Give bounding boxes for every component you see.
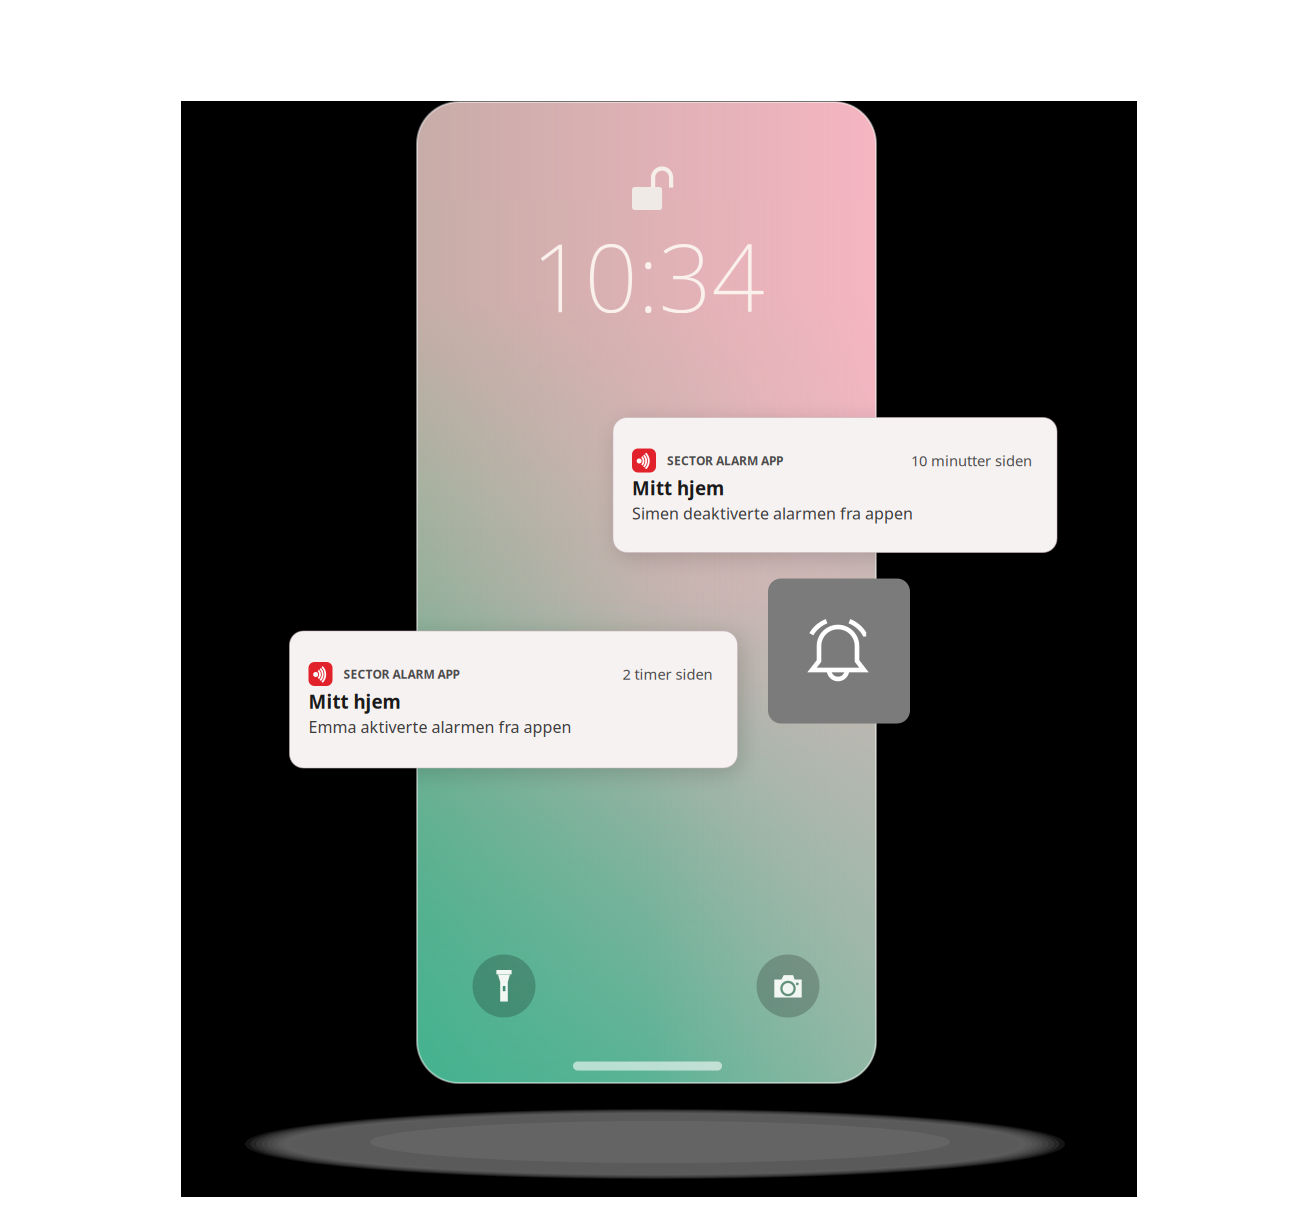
staticText: 10:34 [531, 214, 764, 338]
staticText: Mitt hjem [308, 689, 400, 714]
button[interactable]: Camera [756, 954, 819, 1017]
staticText: 2 timer siden [622, 664, 712, 684]
staticText: 10 minutter siden [911, 451, 1032, 470]
staticText: Emma aktiverte alarmen fra appen [308, 716, 571, 737]
button[interactable]: SECTOR ALARM APP [613, 417, 1057, 552]
staticText: SECTOR ALARM APP [343, 666, 459, 682]
button[interactable]: Notifications [768, 578, 910, 723]
staticText: SECTOR ALARM APP [667, 452, 783, 468]
button[interactable]: Flashlight [472, 954, 535, 1017]
button[interactable]: SECTOR ALARM APP [289, 631, 737, 768]
staticText: Mitt hjem [632, 475, 724, 500]
staticText: Simen deaktiverte alarmen fra appen [632, 503, 913, 524]
